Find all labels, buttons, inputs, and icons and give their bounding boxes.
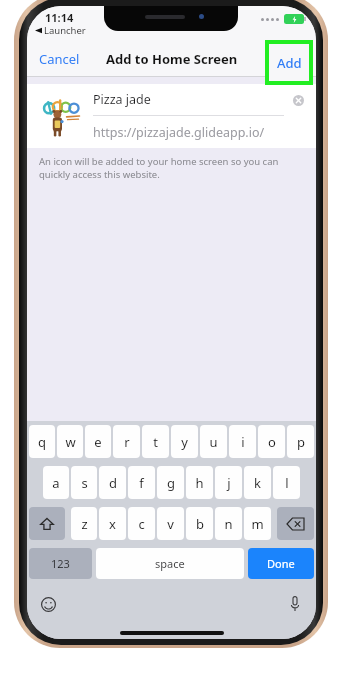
staticText: i [241, 433, 245, 451]
button[interactable]: q [29, 425, 55, 458]
button[interactable]: z [71, 507, 97, 540]
staticText: Cancel [39, 50, 80, 68]
staticText: Add [277, 54, 302, 72]
button[interactable]: o [258, 425, 285, 458]
button[interactable]: y [171, 425, 198, 458]
button[interactable]: p [287, 425, 314, 458]
staticText: d [109, 474, 117, 492]
staticText: z [81, 515, 88, 533]
button[interactable]: Cancel [27, 40, 92, 77]
button[interactable] [272, 40, 316, 77]
staticText: y [181, 433, 188, 451]
staticText: p [297, 433, 305, 451]
staticText: v [167, 515, 174, 533]
button[interactable]: Pizza jade [93, 84, 284, 115]
button[interactable]: w [57, 425, 83, 458]
button[interactable]: g [157, 466, 184, 499]
staticText: c [138, 515, 145, 533]
staticText: b [196, 515, 204, 533]
button[interactable]: t [142, 425, 169, 458]
button[interactable]: k [244, 466, 271, 499]
staticText: https://pizzajade.glideapp.io/ [93, 124, 265, 141]
staticText: 11:14 [45, 10, 74, 25]
staticText: Add to Home Screen [106, 50, 238, 68]
button[interactable]: n [215, 507, 242, 540]
button[interactable]: x [99, 507, 126, 540]
button[interactable]: d [99, 466, 126, 499]
button[interactable]: 123 [29, 548, 92, 579]
button[interactable]: Emoji keyboard [35, 591, 61, 617]
staticText: f [139, 474, 144, 492]
button[interactable]: v [157, 507, 184, 540]
staticText: q [38, 433, 46, 451]
staticText: e [94, 433, 102, 451]
staticText: s [81, 474, 88, 492]
staticText: t [153, 433, 158, 451]
button[interactable]: b [186, 507, 213, 540]
button[interactable]: a [43, 466, 69, 499]
staticText: o [268, 433, 276, 451]
button[interactable]: c [128, 507, 155, 540]
button[interactable]: j [215, 466, 242, 499]
button[interactable]: u [200, 425, 227, 458]
staticText: m [251, 515, 264, 533]
button[interactable]: m [244, 507, 271, 540]
button[interactable]: e [85, 425, 111, 458]
staticText: Pizza jade [93, 91, 151, 108]
button[interactable]: s [71, 466, 97, 499]
staticText: Launcher [44, 24, 86, 37]
staticText: 123 [51, 556, 70, 571]
button[interactable]: Dictation [282, 591, 308, 617]
staticText: w [65, 433, 76, 451]
button[interactable]: https://pizzajade.glideapp.io/ [93, 116, 284, 148]
button[interactable]: l [273, 466, 300, 499]
staticText: k [254, 474, 261, 492]
staticText: n [224, 515, 233, 533]
button[interactable]: space [96, 548, 244, 579]
staticText: space [155, 556, 185, 571]
staticText: h [195, 474, 204, 492]
staticText: An icon will be added to your home scree… [39, 155, 304, 181]
staticText: j [227, 474, 231, 492]
staticText: l [285, 474, 289, 492]
button[interactable]: Done [248, 548, 314, 579]
staticText: u [209, 433, 218, 451]
staticText: a [52, 474, 60, 492]
button[interactable]: r [113, 425, 140, 458]
staticText: r [124, 433, 130, 451]
button[interactable]: Backspace [277, 507, 314, 540]
button[interactable]: f [128, 466, 155, 499]
button[interactable]: i [229, 425, 256, 458]
staticText: g [167, 474, 175, 492]
staticText: Done [267, 556, 295, 571]
staticText: x [109, 515, 116, 533]
button[interactable]: Shift [29, 507, 65, 540]
button[interactable]: h [186, 466, 213, 499]
button[interactable]: Clear text [284, 86, 312, 114]
